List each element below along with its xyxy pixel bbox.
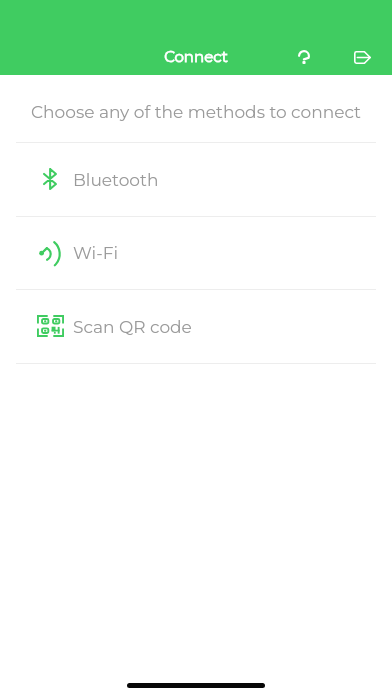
button[interactable]: Scan QR code	[0, 289, 392, 363]
button[interactable]: Help	[282, 36, 326, 78]
staticText: Choose any of the methods to connect	[0, 102, 392, 123]
button[interactable]: Log out	[339, 36, 385, 78]
staticText: Scan QR code	[73, 317, 192, 338]
button[interactable]: Wi-Fi	[0, 216, 392, 289]
staticText: Bluetooth	[73, 170, 159, 191]
button[interactable]: Bluetooth	[0, 142, 392, 216]
staticText: Connect	[0, 47, 392, 65]
staticText: Wi-Fi	[73, 243, 118, 264]
